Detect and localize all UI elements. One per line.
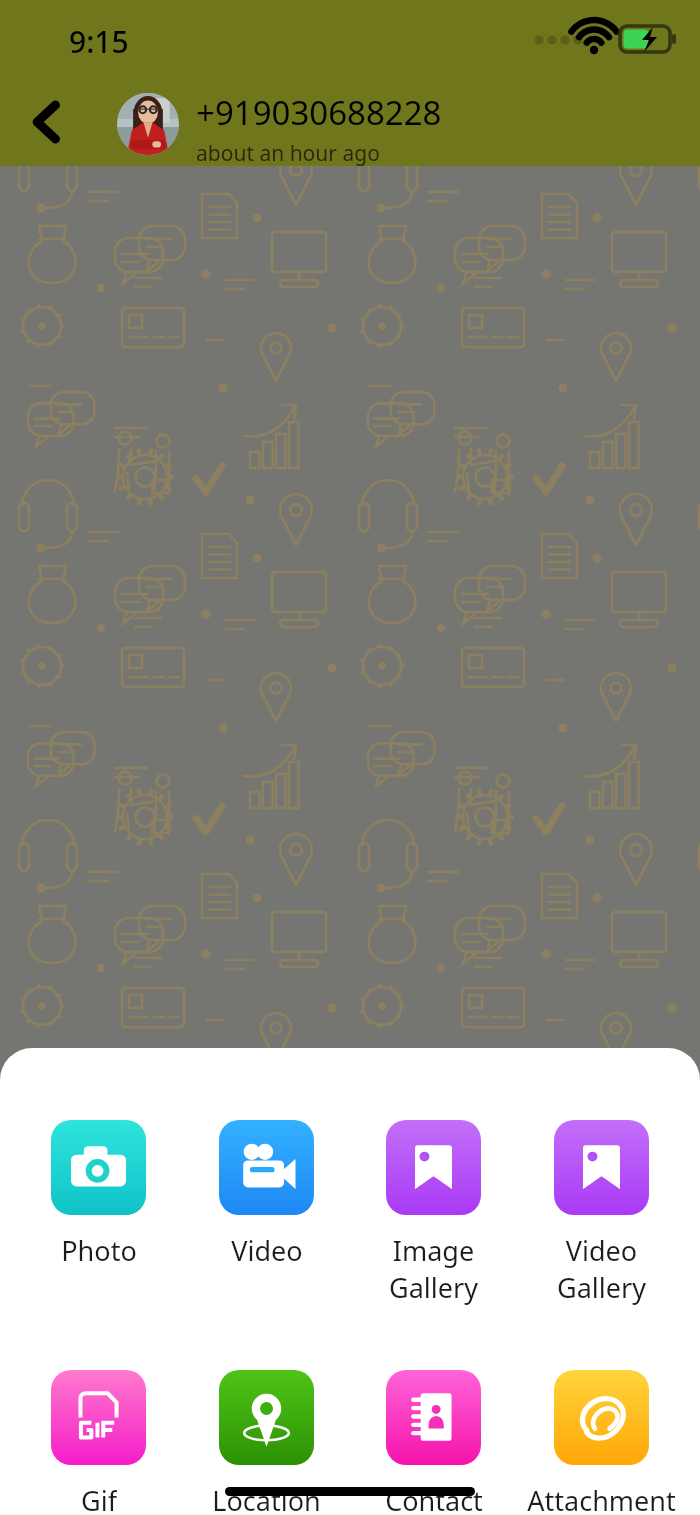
button[interactable]: Gif — [21, 1370, 176, 1515]
staticText: Contact — [385, 1482, 483, 1515]
button[interactable]: Photo — [21, 1120, 176, 1269]
button[interactable]: Attachments — [524, 1370, 679, 1515]
staticText: Video Gallery — [524, 1232, 679, 1306]
button[interactable]: Contact — [356, 1370, 511, 1515]
staticText: Video — [231, 1232, 303, 1269]
button[interactable]: Video Gallery — [524, 1120, 679, 1306]
button[interactable]: Contact photo — [117, 93, 179, 155]
button[interactable]: Image Gallery — [356, 1120, 511, 1306]
staticText: 9:15 — [69, 21, 129, 62]
staticText: Image Gallery — [356, 1232, 511, 1306]
staticText: about an hour ago — [196, 139, 380, 168]
button[interactable]: Back — [16, 90, 80, 154]
staticText: Location — [212, 1482, 321, 1515]
staticText: +919030688228 — [196, 90, 442, 135]
staticText: Attachments — [524, 1482, 679, 1515]
button[interactable]: Location — [189, 1370, 344, 1515]
staticText: Gif — [81, 1482, 117, 1515]
button[interactable]: Video — [189, 1120, 344, 1269]
staticText: Photo — [61, 1232, 137, 1269]
